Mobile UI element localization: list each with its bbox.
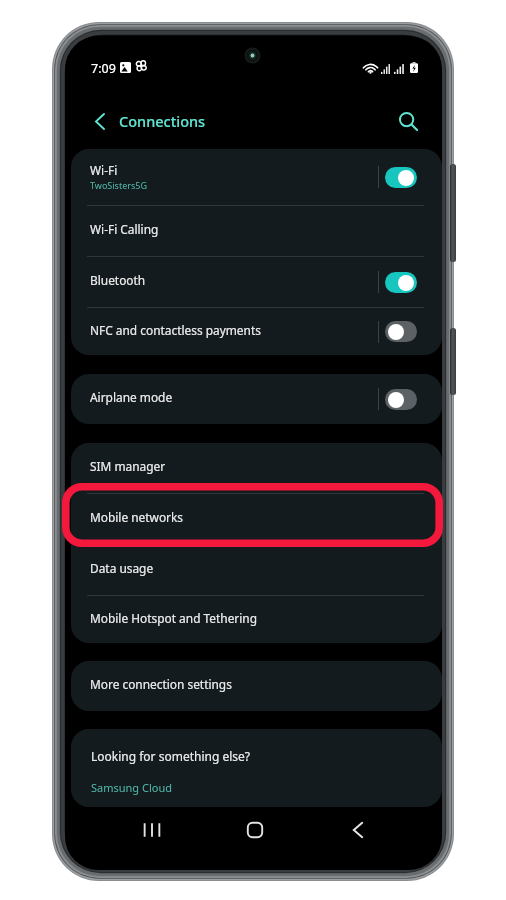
staticText: SIM manager	[90, 458, 166, 474]
staticText: Mobile networks	[90, 509, 184, 525]
staticText: Data usage	[90, 560, 154, 576]
staticText: Wi-Fi	[90, 162, 118, 178]
staticText: Wi-Fi Calling	[90, 221, 159, 237]
button[interactable]: Wi-Fi Calling	[71, 206, 442, 256]
button[interactable]: Samsung Cloud	[91, 776, 172, 798]
button[interactable]: NFC and contactless payments	[71, 308, 442, 355]
staticText: Samsung Cloud	[91, 780, 172, 795]
button[interactable]: On	[385, 167, 417, 188]
staticText: Mobile Hotspot and Tethering	[90, 610, 258, 626]
button[interactable]: Mobile Hotspot and Tethering	[71, 596, 442, 643]
staticText: More connection settings	[90, 676, 232, 692]
button[interactable]: More connection settings	[71, 661, 442, 711]
staticText: 7:09	[91, 60, 116, 74]
button[interactable]: Recent apps	[126, 804, 178, 856]
staticText: NFC and contactless payments	[90, 322, 261, 338]
button[interactable]: Off	[385, 321, 417, 342]
button[interactable]: Data usage	[71, 545, 442, 595]
button[interactable]: Home	[229, 804, 281, 856]
staticText: Looking for something else?	[91, 748, 251, 764]
button[interactable]: On	[385, 272, 417, 293]
staticText: Bluetooth	[90, 272, 146, 288]
button[interactable]: Mobile networks	[71, 494, 442, 544]
button[interactable]: Airplane mode	[71, 374, 442, 424]
button[interactable]: Search	[390, 103, 426, 139]
button[interactable]: Wi-Fi	[71, 149, 442, 205]
button[interactable]: SIM manager	[71, 443, 442, 493]
button[interactable]: Off	[385, 389, 417, 410]
staticText: Airplane mode	[90, 389, 173, 405]
button[interactable]: Navigate up	[83, 97, 117, 145]
staticText: TwoSisters5G	[90, 179, 147, 191]
staticText: Connections	[119, 111, 206, 131]
button[interactable]: Bluetooth	[71, 257, 442, 307]
button[interactable]: Back	[332, 804, 384, 856]
